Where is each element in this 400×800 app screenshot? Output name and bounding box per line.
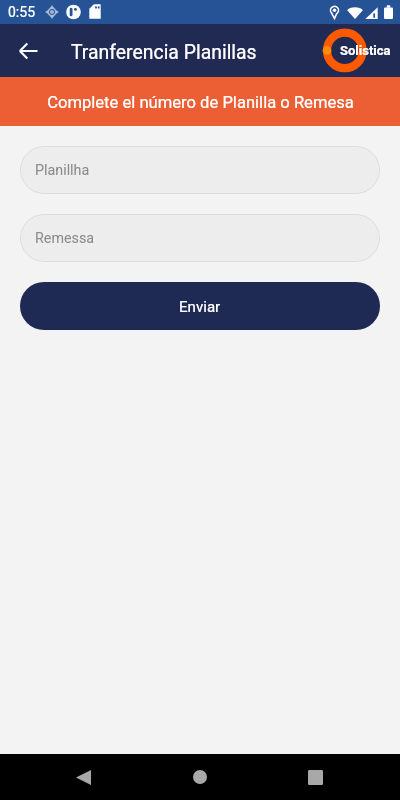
button[interactable]: Enviar [20,282,380,330]
staticText: Planillha [35,162,90,179]
staticText: 0:55 [8,4,35,20]
button[interactable]: Planillha [20,146,380,194]
button[interactable]: Back [59,754,107,800]
staticText: Remessa [35,230,95,247]
staticText: Tranferencia Planillas [71,41,257,64]
button[interactable]: Back [6,29,50,73]
button[interactable]: Remessa [20,214,380,262]
staticText: Solistica [340,43,391,58]
staticText: Enviar [179,298,221,316]
staticText: Complete el número de Planilla o Remesa [47,93,354,112]
button[interactable]: Home [176,754,224,800]
button[interactable]: Recents [291,754,339,800]
